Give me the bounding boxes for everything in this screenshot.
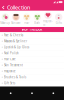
staticText: Mascara & Eyeliner xyxy=(4,39,27,43)
staticText: Lipstick & Lip Gloss xyxy=(4,45,29,49)
button[interactable]: Fragrance xyxy=(0,68,64,74)
button[interactable]: Gifts xyxy=(53,13,64,25)
button[interactable]: Gift Sets xyxy=(0,80,64,86)
button[interactable]: Back xyxy=(1,4,6,11)
button[interactable]: Skincare xyxy=(11,13,21,25)
button[interactable]: Makeup xyxy=(0,13,11,25)
button[interactable]: Hair Care xyxy=(0,56,64,62)
staticText: Nail Polish xyxy=(4,51,19,55)
button[interactable]: Fragrance xyxy=(43,12,53,27)
staticText: Skin Treatment xyxy=(4,63,23,67)
button[interactable]: Face & Cheeks xyxy=(0,32,64,38)
staticText: Face & Cheeks xyxy=(4,33,23,37)
button[interactable]: Brushes & Tools xyxy=(0,74,64,80)
button[interactable]: Lipstick & Lip Gloss xyxy=(0,44,64,50)
button[interactable]: Mascara & Eyeliner xyxy=(0,38,64,44)
button[interactable]: SHOP THE LOOK xyxy=(0,27,64,32)
button[interactable]: Back xyxy=(0,86,21,100)
button[interactable]: Nail Polish xyxy=(0,50,64,56)
button[interactable]: Recent apps xyxy=(43,86,64,100)
staticText: Hair xyxy=(24,21,29,25)
button[interactable]: Home xyxy=(21,86,43,100)
staticText: Brushes & Tools xyxy=(4,75,26,79)
staticText: Makeup xyxy=(0,21,10,25)
staticText: Skincare xyxy=(11,21,21,25)
button[interactable]: Hair xyxy=(21,13,32,25)
staticText: Hair Care xyxy=(4,57,16,61)
staticText: Fragrance xyxy=(4,69,16,73)
staticText: Fragrance xyxy=(43,19,53,27)
staticText: Collection xyxy=(7,4,30,11)
button[interactable]: Bath xyxy=(32,13,43,25)
button[interactable]: Skin Treatment xyxy=(0,62,64,68)
staticText: Bath xyxy=(34,21,40,25)
staticText: SHOP THE LOOK xyxy=(21,28,42,31)
staticText: Gifts xyxy=(56,21,62,25)
staticText: Gift Sets xyxy=(4,81,15,85)
